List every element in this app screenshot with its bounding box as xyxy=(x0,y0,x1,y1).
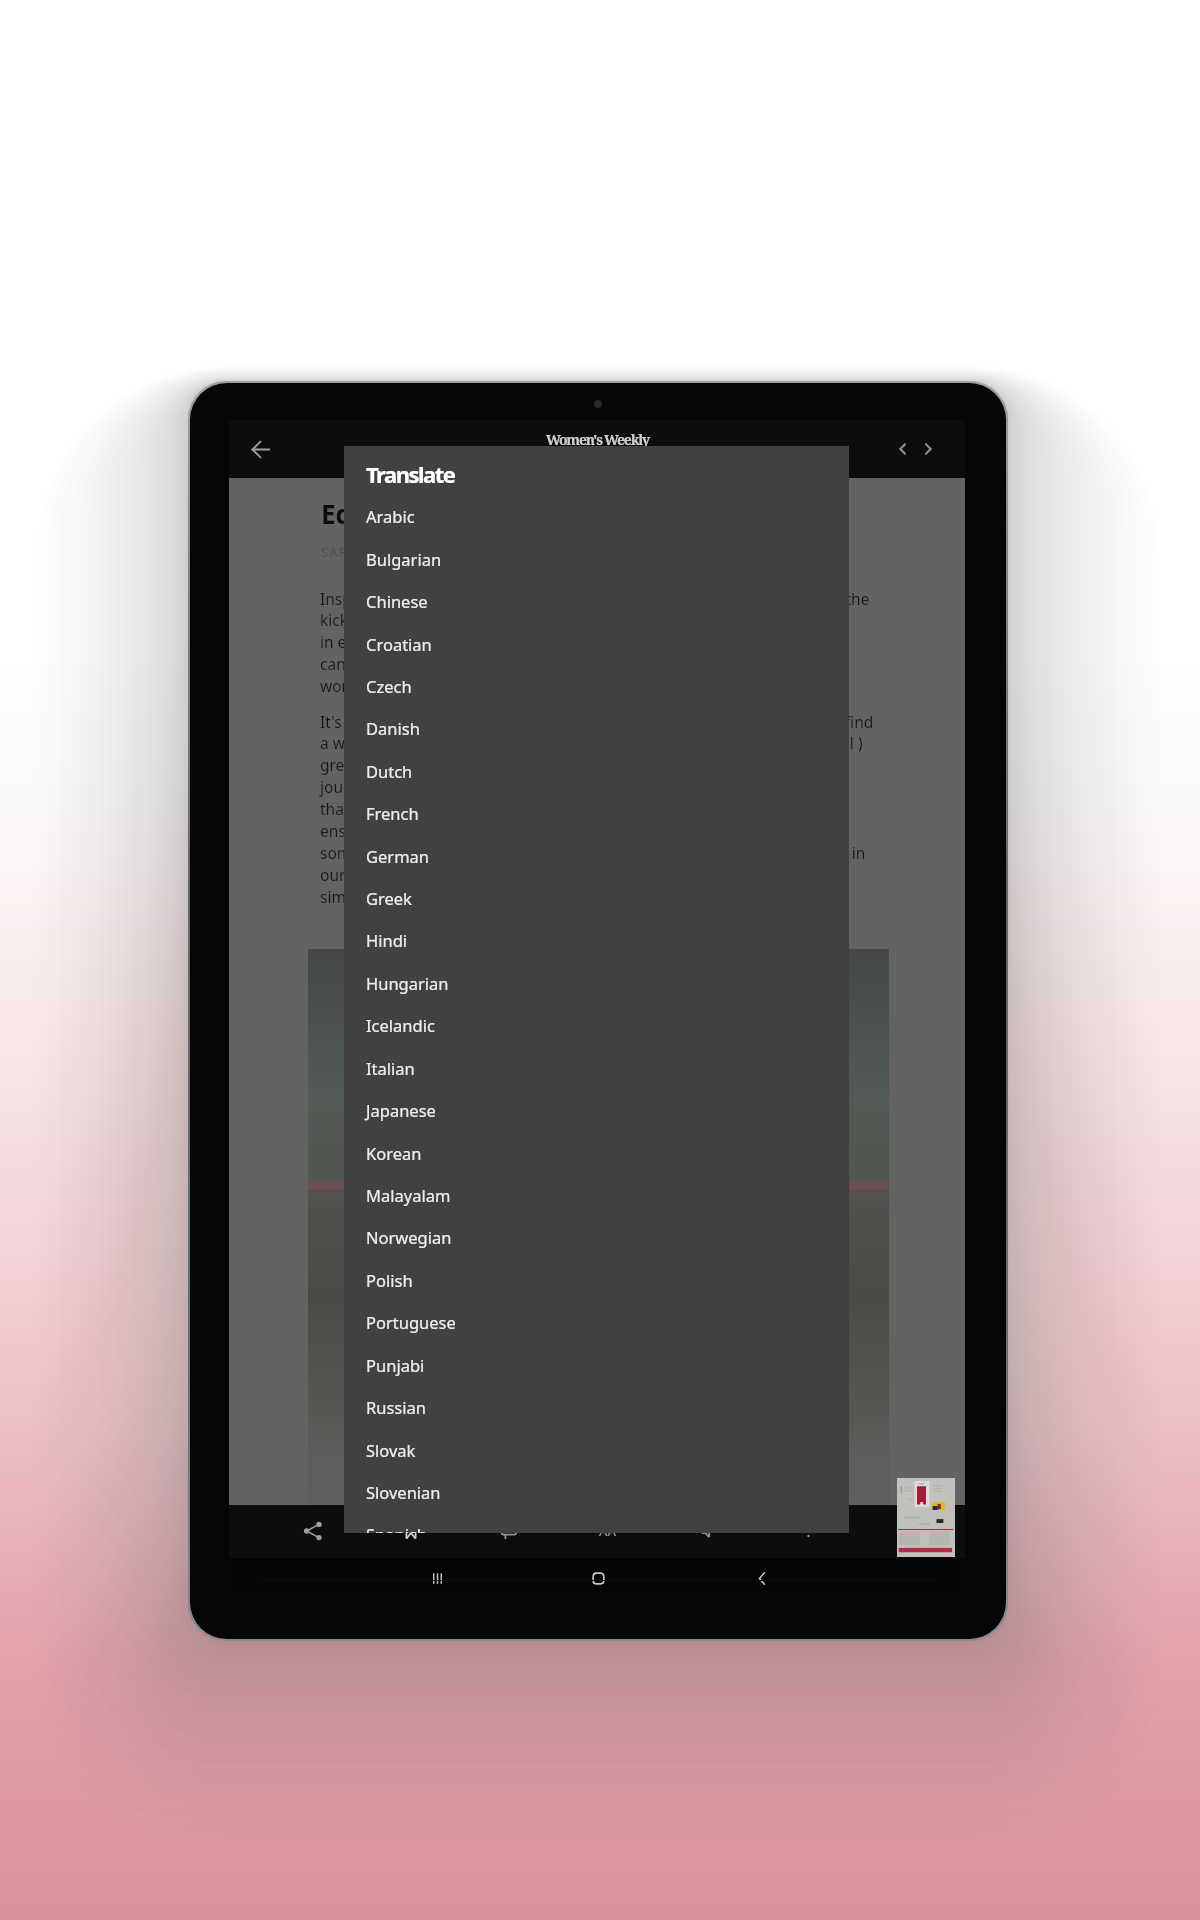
staticText: Russian xyxy=(366,1396,426,1418)
button[interactable]: Norwegian xyxy=(344,1216,849,1258)
button[interactable]: French xyxy=(344,792,849,834)
button[interactable]: Comments xyxy=(487,1509,531,1553)
button[interactable]: Previous page xyxy=(886,432,920,466)
button[interactable]: Danish xyxy=(344,707,849,749)
button[interactable]: Italian xyxy=(344,1047,849,1089)
staticText: Hungarian xyxy=(366,972,449,994)
staticText: German xyxy=(366,845,430,867)
button[interactable]: Slovak xyxy=(344,1429,849,1471)
staticText: Editor's letter xyxy=(321,496,499,531)
button[interactable]: Listen xyxy=(686,1509,730,1553)
staticText: Translate xyxy=(366,459,455,489)
staticText: Malayalam xyxy=(366,1184,451,1206)
staticText: Arabic xyxy=(366,505,415,527)
button[interactable]: Greek xyxy=(344,877,849,919)
button[interactable]: Text size xyxy=(586,1509,630,1553)
button[interactable]: Back xyxy=(238,427,282,471)
staticText: Czech xyxy=(366,675,412,697)
staticText: Slovak xyxy=(366,1439,416,1461)
staticText: Bulgarian xyxy=(366,548,442,570)
button[interactable]: Bookmark xyxy=(389,1509,433,1553)
staticText: Punjabi xyxy=(366,1354,425,1376)
button[interactable]: Home xyxy=(576,1558,620,1598)
staticText: Japanese xyxy=(366,1099,436,1121)
button[interactable]: Hungarian xyxy=(344,962,849,1004)
button[interactable]: Korean xyxy=(344,1132,849,1174)
button[interactable]: Spanish xyxy=(344,1513,849,1533)
staticText: Women's Weekly xyxy=(546,430,649,449)
button[interactable]: Slovenian xyxy=(344,1471,849,1513)
staticText: Portuguese xyxy=(366,1311,456,1333)
button[interactable]: Polish xyxy=(344,1259,849,1301)
staticText: Korean xyxy=(366,1142,422,1164)
button[interactable]: Punjabi xyxy=(344,1344,849,1386)
staticText: AA xyxy=(599,1522,617,1540)
button[interactable]: Arabic xyxy=(344,495,849,537)
button[interactable]: Chinese xyxy=(344,580,849,622)
button[interactable]: Share xyxy=(291,1509,335,1553)
button[interactable]: Dutch xyxy=(344,750,849,792)
button[interactable]: More options xyxy=(786,1509,830,1553)
staticText: Norwegian xyxy=(366,1226,452,1248)
staticText: Polish xyxy=(366,1269,413,1291)
button[interactable]: Croatian xyxy=(344,623,849,665)
staticText: Slovenian xyxy=(366,1481,441,1503)
button[interactable]: Page thumbnail xyxy=(897,1478,955,1557)
button[interactable]: Recent apps xyxy=(415,1558,459,1598)
staticText: Croatian xyxy=(366,633,432,655)
button[interactable]: Hindi xyxy=(344,919,849,961)
staticText: Danish xyxy=(366,717,420,739)
button[interactable]: Russian xyxy=(344,1386,849,1428)
button[interactable]: Next page xyxy=(911,432,945,466)
staticText: Italian xyxy=(366,1057,415,1079)
button[interactable]: Malayalam xyxy=(344,1174,849,1216)
button[interactable]: Japanese xyxy=(344,1089,849,1131)
button[interactable]: Bulgarian xyxy=(344,538,849,580)
button[interactable]: Icelandic xyxy=(344,1004,849,1046)
staticText: Hindi xyxy=(366,929,408,951)
staticText: Chinese xyxy=(366,590,428,612)
staticText: Dutch xyxy=(366,760,413,782)
staticText: It's been a real joy to put this issue t… xyxy=(320,711,960,908)
staticText: Inspired by the arrival of a sunny new s… xyxy=(320,588,960,697)
button[interactable]: Portuguese xyxy=(344,1301,849,1343)
button[interactable]: German xyxy=(344,835,849,877)
staticText: Spanish xyxy=(366,1523,428,1533)
staticText: French xyxy=(366,802,419,824)
staticText: Icelandic xyxy=(366,1014,435,1036)
staticText: SARAH JOHNSON xyxy=(321,544,443,561)
button[interactable]: Back xyxy=(740,1558,784,1598)
button[interactable]: Czech xyxy=(344,665,849,707)
staticText: Greek xyxy=(366,887,412,909)
